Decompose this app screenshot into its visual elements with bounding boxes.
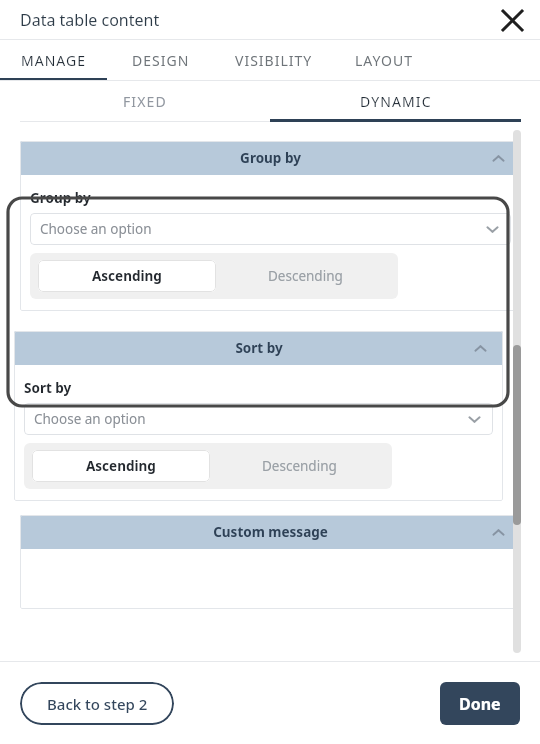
button[interactable]: Ascending (38, 260, 216, 292)
staticText: Custom message (213, 523, 328, 541)
staticText: VISIBILITY (235, 51, 313, 70)
button[interactable]: MANAGE (0, 40, 107, 81)
button[interactable]: LAYOUT (334, 40, 434, 81)
button[interactable]: Done (440, 682, 520, 725)
staticText: Sort by (235, 339, 283, 357)
button[interactable]: Sort by (14, 331, 503, 365)
button[interactable]: Close (495, 3, 529, 37)
button[interactable]: Group by (20, 141, 521, 175)
staticText: Descending (268, 267, 343, 285)
button[interactable]: DYNAMIC (270, 81, 521, 122)
staticText: DESIGN (132, 51, 190, 70)
button[interactable]: FIXED (20, 81, 270, 122)
staticText: LAYOUT (355, 51, 414, 70)
button[interactable]: Back to step 2 (20, 682, 174, 725)
staticText: Data table content (20, 9, 160, 31)
staticText: FIXED (123, 92, 167, 111)
staticText: Group by (240, 149, 301, 167)
button[interactable]: Descending (216, 260, 394, 292)
button[interactable]: Choose an option (30, 213, 511, 245)
staticText: Choose an option (34, 410, 146, 428)
staticText: Sort by (24, 379, 72, 397)
button[interactable]: Choose an option (24, 403, 493, 435)
staticText: Ascending (86, 457, 156, 475)
staticText: Choose an option (40, 220, 152, 238)
staticText: Back to step 2 (47, 694, 148, 714)
button[interactable]: Custom message (20, 515, 521, 549)
staticText: Group by (30, 189, 91, 207)
staticText: DYNAMIC (360, 92, 432, 111)
button[interactable]: DESIGN (107, 40, 214, 81)
button[interactable]: VISIBILITY (214, 40, 334, 81)
staticText: MANAGE (21, 51, 86, 70)
button[interactable]: Ascending (32, 450, 210, 482)
staticText: Done (459, 693, 501, 715)
staticText: Descending (262, 457, 337, 475)
staticText: Ascending (92, 267, 162, 285)
button[interactable]: Descending (210, 450, 388, 482)
